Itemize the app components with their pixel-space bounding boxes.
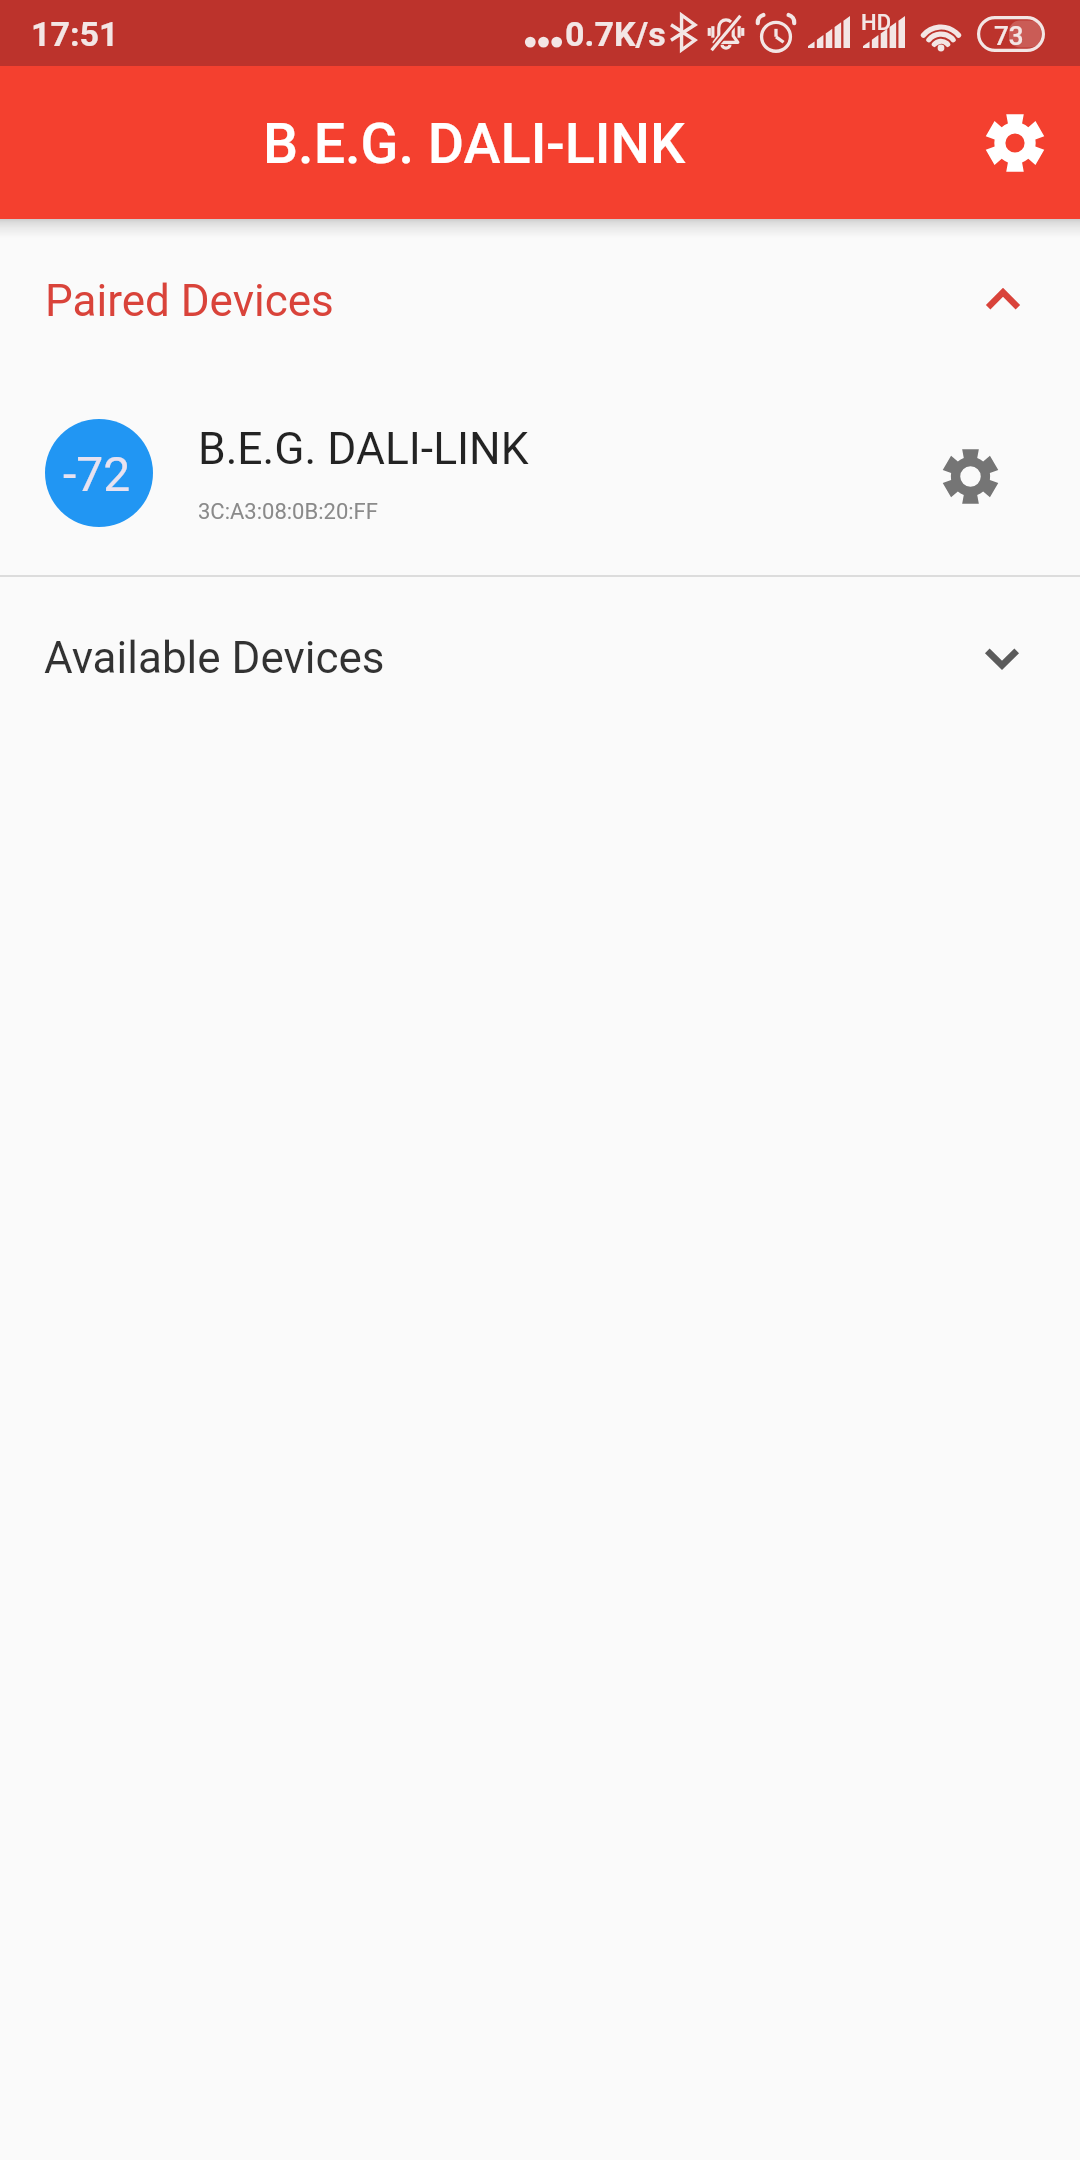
staticText: HD: [861, 10, 892, 36]
staticText: 3C:A3:08:0B:20:FF: [198, 499, 378, 525]
staticText: -72: [63, 446, 131, 502]
button[interactable]: Device settings: [920, 426, 1020, 526]
button[interactable]: Available Devices: [0, 577, 1080, 737]
staticText: 73: [994, 21, 1024, 51]
staticText: Paired Devices: [45, 275, 334, 327]
button[interactable]: Paired Devices: [0, 223, 1080, 378]
staticText: 17:51: [31, 14, 119, 54]
button[interactable]: -72: [0, 385, 1080, 565]
staticText: Available Devices: [44, 632, 385, 684]
button[interactable]: Settings: [965, 93, 1065, 193]
staticText: 0.7K/s: [565, 14, 666, 54]
staticText: B.E.G. DALI-LINK: [263, 111, 685, 176]
staticText: B.E.G. DALI-LINK: [198, 423, 529, 475]
